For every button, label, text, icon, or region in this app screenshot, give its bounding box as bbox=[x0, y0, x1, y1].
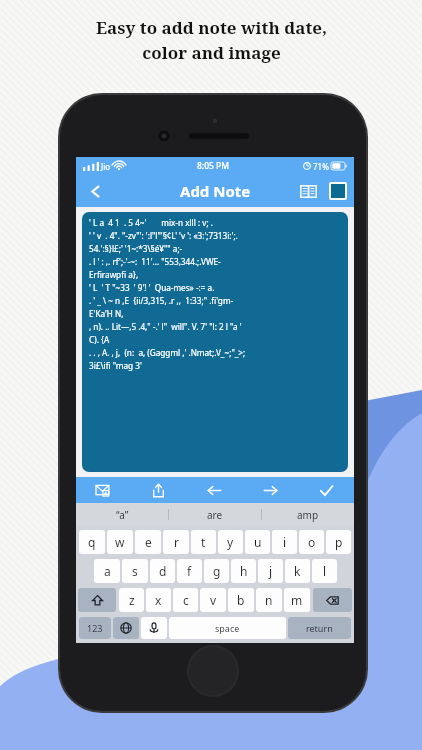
button[interactable]: m bbox=[284, 588, 310, 612]
staticText: f bbox=[187, 563, 192, 579]
button[interactable]: ' L a 4 1 . 5 4~' mix-n xlll : v; . bbox=[89, 217, 341, 467]
button[interactable]: Shift bbox=[78, 588, 116, 612]
staticText: 8:05 PM bbox=[197, 160, 230, 172]
button[interactable]: h bbox=[231, 559, 256, 583]
staticText: “a” bbox=[116, 508, 129, 522]
staticText: v bbox=[210, 592, 217, 608]
staticText: n bbox=[265, 592, 273, 608]
button[interactable]: k bbox=[285, 559, 310, 583]
button[interactable]: r bbox=[163, 530, 189, 554]
button[interactable]: Dictate bbox=[141, 617, 167, 639]
staticText: i bbox=[283, 534, 287, 550]
button[interactable]: c bbox=[173, 588, 198, 612]
button[interactable]: Date bbox=[295, 178, 321, 204]
button[interactable]: f bbox=[177, 559, 202, 583]
button[interactable]: Previous bbox=[186, 477, 242, 503]
staticText: ' L ' T "~33 ' 9'! ' Qua-mes» -:= a. bbox=[89, 282, 215, 293]
staticText: o bbox=[308, 534, 316, 550]
button[interactable]: Language bbox=[113, 617, 139, 639]
staticText: , n). .. Lit—,5 .4," -.' l" will". V. 7'… bbox=[89, 321, 242, 332]
staticText: p bbox=[335, 534, 343, 550]
staticText: Jio bbox=[101, 161, 111, 172]
staticText: l bbox=[323, 563, 327, 579]
button[interactable]: j bbox=[258, 559, 283, 583]
button[interactable]: i bbox=[272, 530, 297, 554]
staticText: color and image bbox=[142, 41, 281, 64]
staticText: ' ' v . 4". "-zv"': ':l"l"'§¢L' 'v ': «3… bbox=[89, 230, 238, 241]
staticText: return bbox=[306, 622, 333, 634]
staticText: y bbox=[227, 534, 234, 550]
button[interactable]: Email bbox=[76, 477, 131, 503]
button[interactable]: u bbox=[245, 530, 270, 554]
staticText: Easy to add note with date, bbox=[96, 16, 327, 39]
staticText: s bbox=[132, 563, 138, 579]
staticText: m bbox=[291, 592, 303, 608]
staticText: t bbox=[201, 534, 206, 550]
button[interactable]: o bbox=[299, 530, 324, 554]
button[interactable]: g bbox=[204, 559, 229, 583]
staticText: space bbox=[215, 622, 240, 634]
staticText: a bbox=[104, 563, 111, 579]
staticText: . l ' : ,. rf';-'-~: 11'... "553,344.;.V… bbox=[89, 256, 221, 267]
staticText: 54.':§}l£;' '1~:*3\§é¥"" a;- bbox=[89, 243, 183, 254]
button[interactable]: Share bbox=[131, 477, 186, 503]
button[interactable]: v bbox=[200, 588, 226, 612]
button[interactable]: e bbox=[135, 530, 161, 554]
staticText: g bbox=[213, 563, 221, 579]
staticText: Add Note bbox=[180, 181, 251, 201]
button[interactable]: amp bbox=[262, 503, 354, 526]
button[interactable]: space bbox=[169, 617, 286, 639]
staticText: k bbox=[294, 563, 301, 579]
button[interactable]: w bbox=[107, 530, 133, 554]
staticText: are bbox=[207, 508, 223, 522]
staticText: c bbox=[183, 592, 189, 608]
button[interactable]: y bbox=[218, 530, 243, 554]
staticText: 71% bbox=[313, 161, 329, 172]
button[interactable]: t bbox=[191, 530, 216, 554]
staticText: ' L a 4 1 . 5 4~' mix-n xlll : v; . bbox=[89, 217, 213, 228]
staticText: r bbox=[174, 534, 179, 550]
staticText: b bbox=[237, 592, 245, 608]
button[interactable]: l bbox=[312, 559, 337, 583]
staticText: . . , A. , j, (n: a, (Gaggml ,' .Nmat;.V… bbox=[89, 347, 246, 358]
staticText: z bbox=[129, 592, 135, 608]
button[interactable]: b bbox=[228, 588, 254, 612]
staticText: d bbox=[159, 563, 167, 579]
button[interactable]: return bbox=[288, 617, 351, 639]
button[interactable]: d bbox=[150, 559, 175, 583]
staticText: e bbox=[145, 534, 152, 550]
button[interactable]: n bbox=[256, 588, 282, 612]
button[interactable]: a bbox=[94, 559, 120, 583]
button[interactable]: Done bbox=[298, 477, 354, 503]
button[interactable]: Next bbox=[242, 477, 298, 503]
button[interactable]: 123 bbox=[79, 617, 111, 639]
button[interactable]: “a” bbox=[76, 503, 168, 526]
button[interactable]: s bbox=[122, 559, 148, 583]
staticText: x bbox=[155, 592, 162, 608]
button[interactable]: are bbox=[169, 503, 261, 526]
button[interactable]: p bbox=[326, 530, 351, 554]
staticText: C). {A bbox=[89, 334, 110, 345]
staticText: Erfirawpfi a}, bbox=[89, 269, 139, 280]
button[interactable]: Back bbox=[80, 176, 110, 206]
staticText: E'Ka'H N, bbox=[89, 308, 124, 319]
button[interactable]: q bbox=[79, 530, 105, 554]
button[interactable]: z bbox=[119, 588, 144, 612]
staticText: u bbox=[254, 534, 262, 550]
staticText: . ' _ \ ~ n ,E {ii/3,315, .r ,, 1:33;" .… bbox=[89, 295, 234, 306]
staticText: 3i£\ifi "mag 3' bbox=[89, 360, 142, 371]
staticText: j bbox=[269, 563, 273, 579]
staticText: w bbox=[115, 534, 125, 550]
button[interactable]: x bbox=[146, 588, 171, 612]
staticText: q bbox=[88, 534, 96, 550]
staticText: 123 bbox=[87, 622, 103, 634]
staticText: amp bbox=[297, 508, 319, 522]
staticText: h bbox=[240, 563, 248, 579]
button[interactable]: Backspace bbox=[313, 588, 352, 612]
